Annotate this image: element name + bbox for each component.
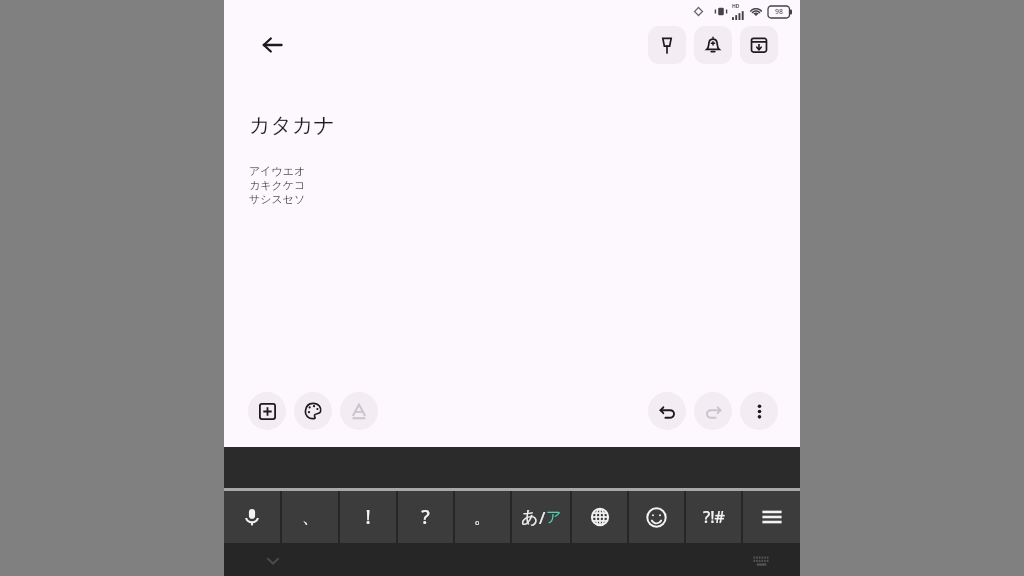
staticText: HD	[732, 3, 740, 10]
button[interactable]: Pin	[648, 26, 686, 64]
button[interactable]: Background colour	[294, 392, 332, 430]
button[interactable]: Back	[250, 23, 294, 67]
button[interactable]: Symbols	[686, 491, 741, 543]
staticText: ?!#	[703, 506, 725, 528]
button[interactable]: Emoji	[629, 491, 684, 543]
button[interactable]: Add	[248, 392, 286, 430]
staticText: カキクケコ	[249, 178, 306, 192]
button[interactable]: Hide keyboard	[256, 545, 290, 576]
staticText: あ	[521, 507, 539, 528]
button[interactable]: 。	[455, 491, 510, 543]
staticText: アイウエオ	[249, 164, 306, 178]
button[interactable]: Menu	[743, 491, 800, 543]
staticText: カタカナ	[249, 112, 335, 138]
button[interactable]: Undo	[648, 392, 686, 430]
staticText: ア	[546, 508, 562, 527]
staticText: /	[539, 506, 546, 529]
button[interactable]: !	[340, 491, 396, 543]
staticText: サシスセソ	[249, 192, 306, 206]
button[interactable]: More options	[740, 392, 778, 430]
button: Formatting	[340, 392, 378, 430]
button[interactable]: Archive	[740, 26, 778, 64]
staticText: 、	[302, 507, 319, 528]
button[interactable]: ?	[398, 491, 453, 543]
button: Redo	[694, 392, 732, 430]
button[interactable]: 、	[282, 491, 338, 543]
button[interactable]: Switch kana	[512, 491, 570, 543]
staticText: 。	[474, 507, 491, 528]
staticText: ?	[421, 504, 430, 530]
staticText: !	[365, 504, 371, 530]
button[interactable]: Voice input	[224, 491, 280, 543]
staticText: 98	[775, 7, 784, 17]
button[interactable]: Keyboard	[746, 547, 776, 576]
button[interactable]: Add reminder	[694, 26, 732, 64]
button[interactable]: Language	[572, 491, 627, 543]
